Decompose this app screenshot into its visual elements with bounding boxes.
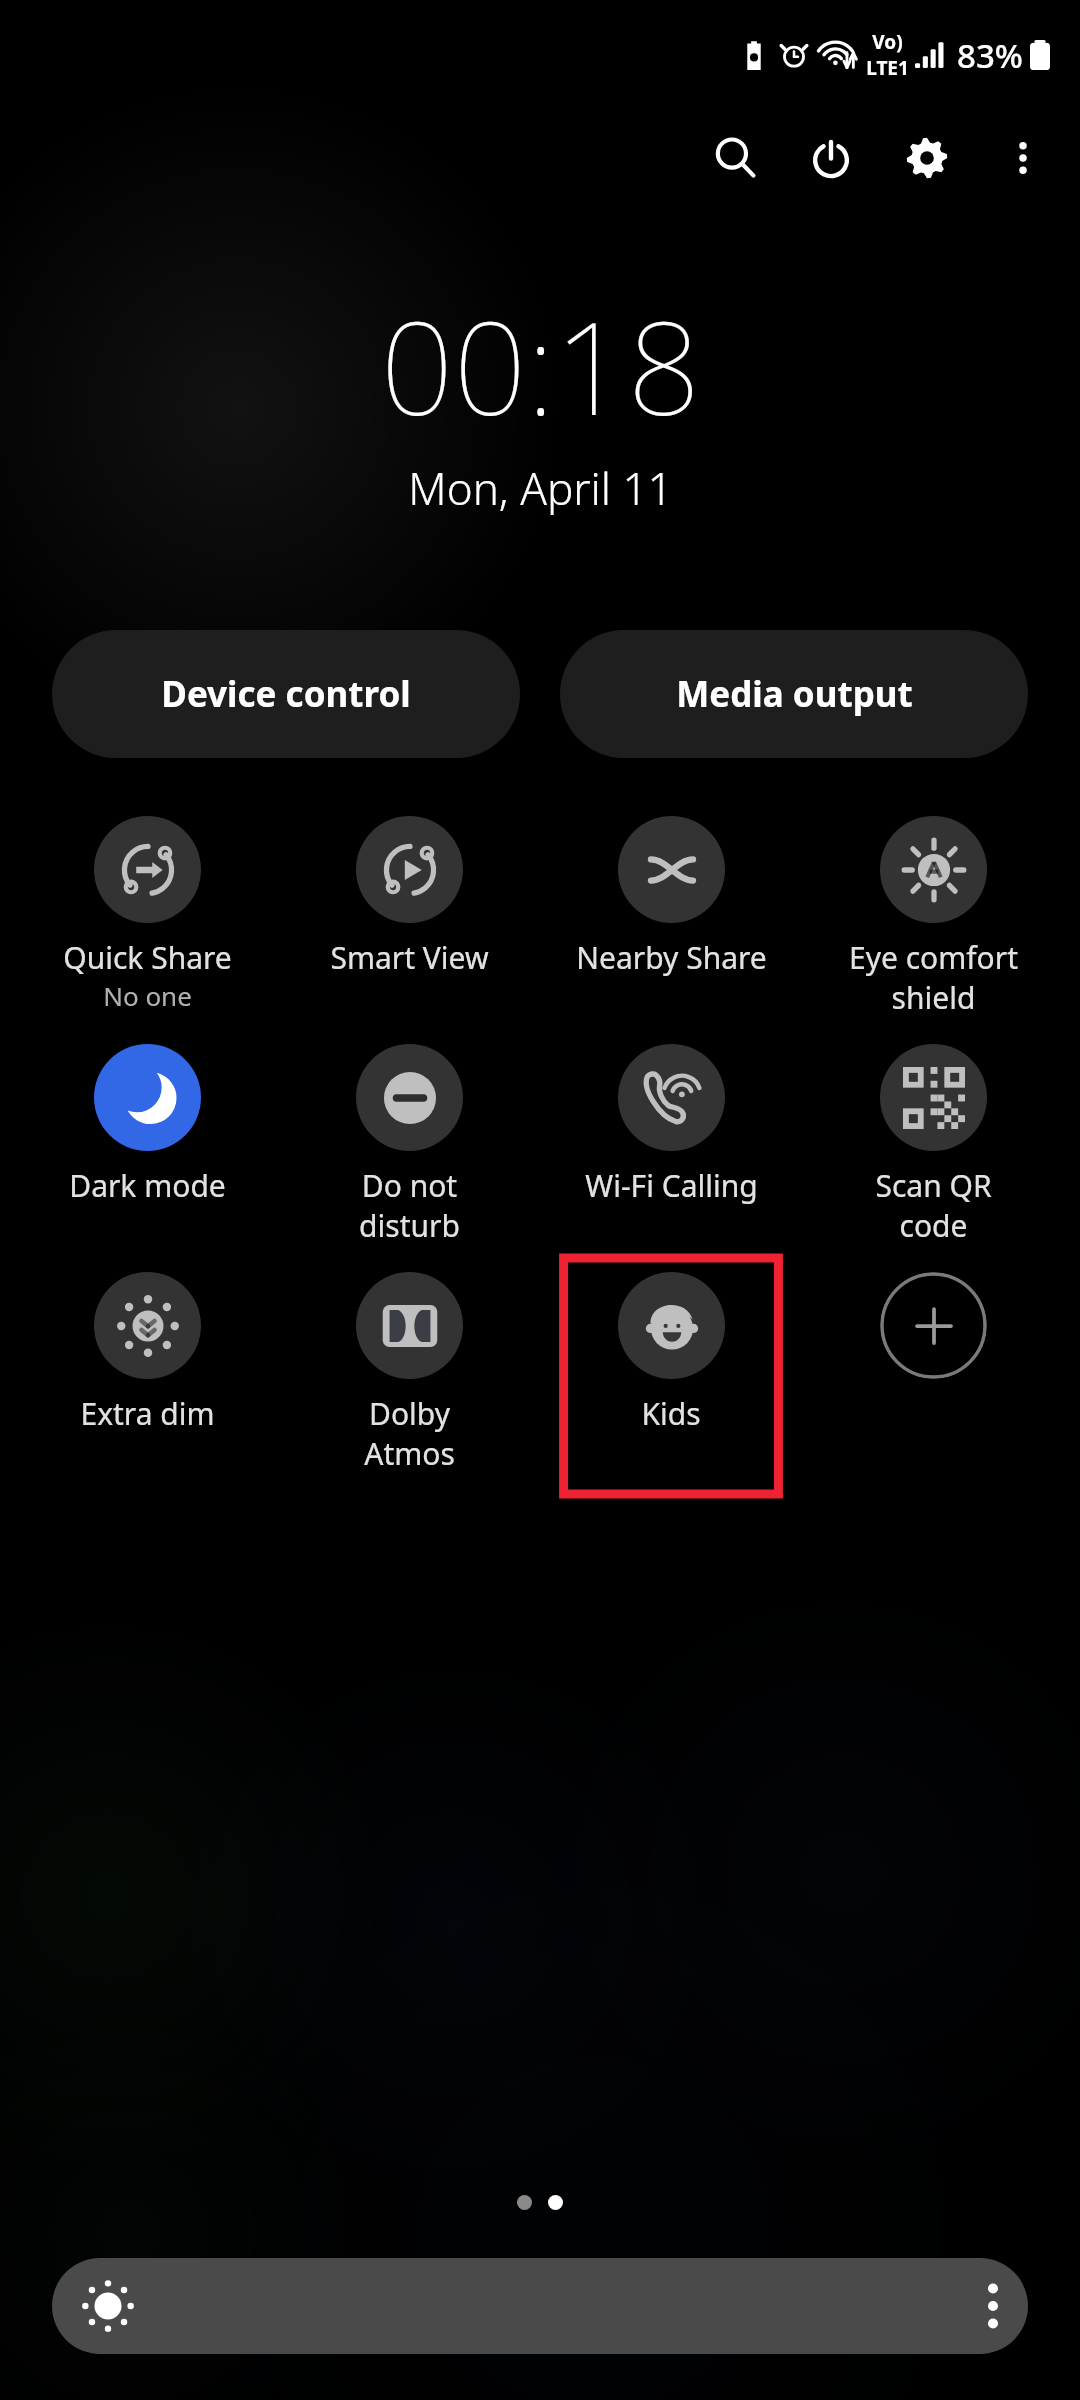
button[interactable]: Media output [560, 630, 1028, 758]
staticText: Do not disturb [359, 1165, 460, 1244]
button[interactable]: More options [986, 121, 1060, 195]
button[interactable]: Scan QR code [802, 1044, 1064, 1244]
staticText: Scan QR code [875, 1165, 992, 1244]
button[interactable]: Settings [890, 121, 964, 195]
button[interactable]: Smart View [278, 816, 540, 978]
staticText: 00:18 [380, 278, 701, 452]
staticText: Mon, April 11 [408, 458, 673, 518]
staticText: Eye comfort shield [849, 937, 1018, 1016]
staticText: Media output [676, 670, 913, 718]
staticText: Smart View [330, 937, 489, 978]
staticText: Vo) [872, 29, 903, 55]
button[interactable]: Eye comfort shield [802, 816, 1064, 1016]
button[interactable]: Device control [52, 630, 520, 758]
button[interactable]: Dark mode [16, 1044, 278, 1206]
button[interactable]: Kids [540, 1272, 802, 1434]
button[interactable]: Dolby Atmos [278, 1272, 540, 1472]
button[interactable]: Search [698, 121, 772, 195]
staticText: Dolby Atmos [364, 1393, 455, 1472]
button[interactable]: Nearby Share [540, 816, 802, 978]
staticText: Device control [161, 670, 411, 718]
button[interactable]: Power [794, 121, 868, 195]
button[interactable]: Extra dim [16, 1272, 278, 1434]
button[interactable]: Brightness [52, 2258, 1028, 2354]
staticText: Dark mode [69, 1165, 226, 1206]
staticText: Wi-Fi Calling [585, 1165, 758, 1206]
staticText: Kids [641, 1393, 701, 1434]
button[interactable]: Add tile [802, 1272, 1064, 1379]
staticText: 83% [957, 33, 1023, 78]
staticText: No one [103, 978, 192, 1013]
staticText: LTE1 [866, 55, 909, 81]
button[interactable]: Wi-Fi Calling [540, 1044, 802, 1206]
staticText: Extra dim [80, 1393, 215, 1434]
staticText: Quick Share [63, 937, 232, 978]
button[interactable]: Do not disturb [278, 1044, 540, 1244]
button[interactable]: Quick Share [16, 816, 278, 1013]
staticText: Nearby Share [576, 937, 767, 978]
